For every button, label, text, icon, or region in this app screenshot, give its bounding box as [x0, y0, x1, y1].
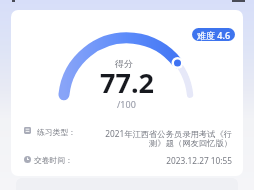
staticText: 交卷时间：	[34, 155, 73, 165]
staticText: 练习类型：	[37, 127, 76, 137]
staticText: 2023.12.27 10:55	[105, 155, 232, 166]
staticText: 77.2	[100, 64, 154, 101]
staticText: /100	[117, 98, 136, 110]
button[interactable]: 难度 4.6	[192, 28, 235, 41]
staticText: 得分	[115, 58, 133, 69]
staticText: 2021年江西省公务员录用考试《行测》题（网友回忆版）	[105, 128, 232, 149]
staticText: 难度 4.6	[197, 29, 231, 41]
